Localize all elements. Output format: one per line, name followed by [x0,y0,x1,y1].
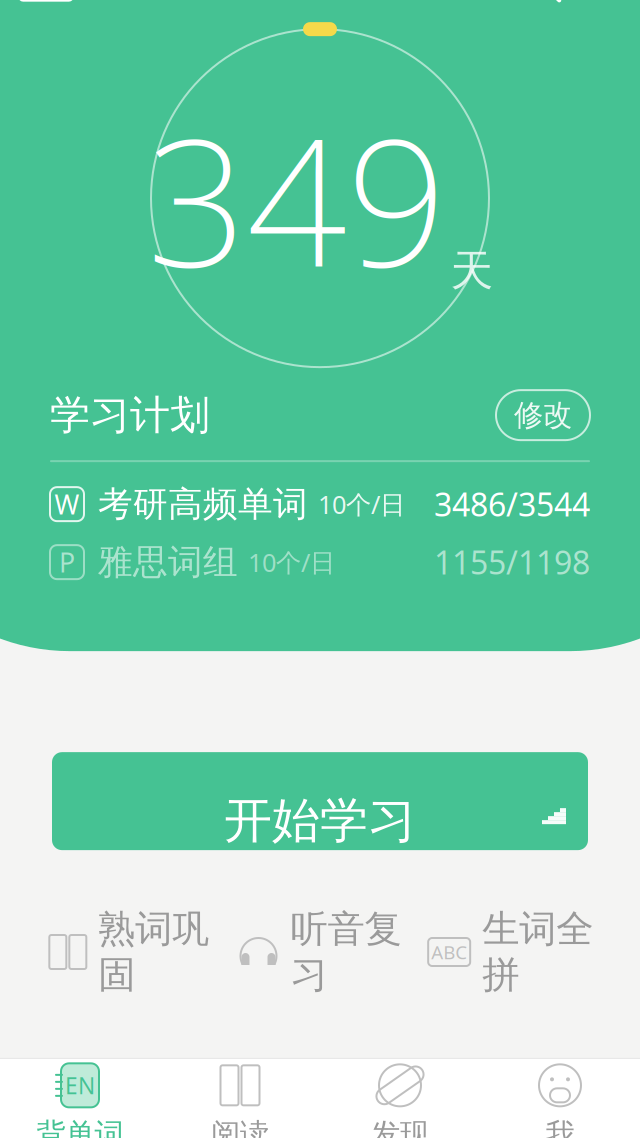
staticText: 生词全拼 [482,906,593,998]
staticText: 3486/3544 [434,483,590,525]
staticText: 发现 [371,1116,429,1138]
button[interactable]: 修改 [496,390,590,440]
staticText: 考研高频单词 [98,483,308,525]
staticText: 雅思词组 [98,541,238,583]
button[interactable]: Messages [14,0,78,11]
button[interactable]: 发现 [320,1059,480,1138]
button[interactable]: Search [508,0,572,11]
button[interactable]: 开始学习 [52,752,588,850]
staticText: W [54,486,79,522]
staticText: 349 [146,81,446,315]
staticText: 听音复习 [290,906,401,998]
staticText: 阅读 [211,1116,269,1138]
button[interactable]: ABC [415,906,606,998]
staticText: 10个/日 [248,545,335,579]
staticText: 开始学习 [224,791,416,850]
button[interactable]: 我 [480,1059,640,1138]
button[interactable]: 阅读 [160,1059,320,1138]
button[interactable]: EN [0,1059,160,1138]
staticText: 熟词巩固 [98,906,209,998]
staticText: P [59,544,75,580]
staticText: 学习计划 [50,391,210,440]
staticText: EN [65,1070,95,1100]
staticText: 天 [450,245,493,297]
staticText: 修改 [514,397,572,433]
button[interactable]: W [0,478,640,530]
button[interactable]: 熟词巩固 [34,906,225,998]
staticText: 10个/日 [318,487,405,521]
staticText: ABC [431,940,467,964]
staticText: 我 [545,1116,574,1138]
staticText: 1155/1198 [434,541,590,583]
staticText: 背单词 [36,1116,123,1138]
button[interactable]: 听音复习 [225,906,415,998]
button[interactable]: P [0,536,640,588]
